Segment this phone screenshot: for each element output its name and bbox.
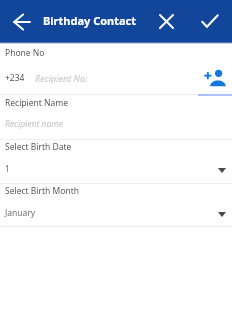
staticText: Recipient name [5,118,63,130]
staticText: Recipient No: [35,72,88,84]
staticText: +234 [5,72,25,84]
button[interactable]: Back [9,9,35,35]
button[interactable]: January [0,201,232,221]
staticText: 1 [5,163,10,175]
button[interactable]: Pick contact [198,62,232,96]
staticText: Recipient Name [5,97,69,109]
staticText: Select Birth Month [5,185,79,197]
staticText: Select Birth Date [5,141,72,153]
button[interactable]: 1 [0,157,232,177]
button[interactable]: Cancel [153,8,179,34]
staticText: Birthday Contact [43,13,137,28]
staticText: Phone No [5,47,45,59]
staticText: January [5,207,36,219]
button[interactable]: Save [197,8,223,34]
